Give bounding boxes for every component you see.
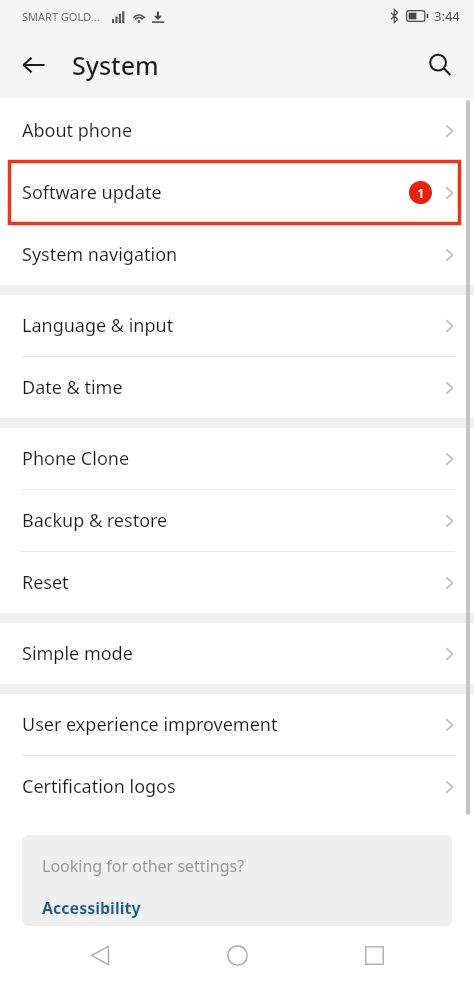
- button[interactable]: Back: [10, 41, 58, 89]
- staticText: Software update: [22, 180, 162, 205]
- button[interactable]: Back: [76, 931, 124, 979]
- button[interactable]: Search: [416, 41, 464, 89]
- button[interactable]: Recents: [350, 931, 398, 979]
- button[interactable]: About phone: [0, 100, 474, 162]
- button[interactable]: Simple mode: [0, 623, 474, 684]
- staticText: Backup & restore: [22, 508, 168, 533]
- staticText: 3:44: [434, 7, 460, 25]
- button[interactable]: System navigation: [0, 224, 474, 285]
- staticText: Date & time: [22, 375, 123, 400]
- button[interactable]: Certification logos: [0, 756, 474, 817]
- button[interactable]: Software update: [0, 162, 474, 224]
- button[interactable]: Phone Clone: [0, 428, 474, 490]
- staticText: System navigation: [22, 242, 178, 267]
- staticText: Language & input: [22, 313, 174, 338]
- staticText: Simple mode: [22, 641, 133, 666]
- staticText: Certification logos: [22, 774, 176, 799]
- staticText: Looking for other settings?: [42, 855, 245, 877]
- staticText: About phone: [22, 118, 133, 143]
- staticText: 1: [417, 184, 425, 202]
- button[interactable]: Reset: [0, 552, 474, 613]
- staticText: SMART GOLD...: [22, 9, 100, 24]
- staticText: System: [72, 48, 159, 82]
- button[interactable]: Date & time: [0, 357, 474, 418]
- button[interactable]: Home: [213, 931, 261, 979]
- button[interactable]: Backup & restore: [0, 490, 474, 552]
- button[interactable]: User experience improvement: [0, 694, 474, 756]
- staticText: User experience improvement: [22, 712, 278, 737]
- staticText: Reset: [22, 570, 69, 595]
- button[interactable]: Accessibility: [42, 897, 141, 919]
- button[interactable]: Language & input: [0, 295, 474, 357]
- staticText: Phone Clone: [22, 446, 130, 471]
